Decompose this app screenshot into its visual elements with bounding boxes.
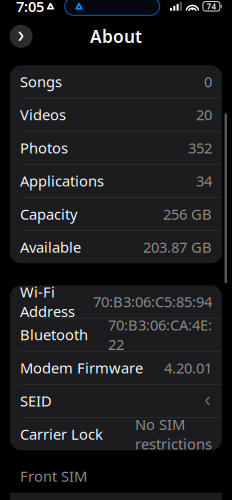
staticText: 70:B3:06:CA:4E:22 [108, 315, 212, 354]
staticText: 4.20.01 [164, 358, 212, 377]
staticText: 7:05 [16, 0, 44, 16]
staticText: Songs [20, 72, 62, 91]
button[interactable]: SEID [10, 385, 222, 417]
staticText: Front SIM [20, 466, 87, 486]
staticText: Carrier Lock [20, 424, 103, 444]
staticText: Bluetooth [20, 325, 88, 344]
staticText: 70:B3:06:C5:85:94 [93, 292, 212, 311]
button[interactable]: Back [6, 21, 36, 51]
staticText: 34 [196, 171, 212, 191]
staticText: 256 GB [163, 204, 212, 224]
staticText: Applications [20, 171, 104, 191]
staticText: 352 [188, 138, 212, 157]
staticText: Capacity [20, 204, 77, 224]
staticText: 20 [196, 105, 212, 124]
staticText: No SIM restrictions [135, 414, 212, 453]
staticText: 74 [206, 1, 216, 12]
staticText: Modem Firmware [20, 358, 143, 377]
staticText: 203.87 GB [143, 237, 212, 257]
staticText: Videos [20, 105, 66, 124]
staticText: SEID [20, 391, 52, 411]
staticText: About [90, 25, 142, 48]
staticText: 0 [204, 72, 212, 91]
staticText: Wi-Fi Address [20, 282, 75, 321]
staticText: Photos [20, 138, 68, 157]
staticText: Available [20, 237, 81, 257]
